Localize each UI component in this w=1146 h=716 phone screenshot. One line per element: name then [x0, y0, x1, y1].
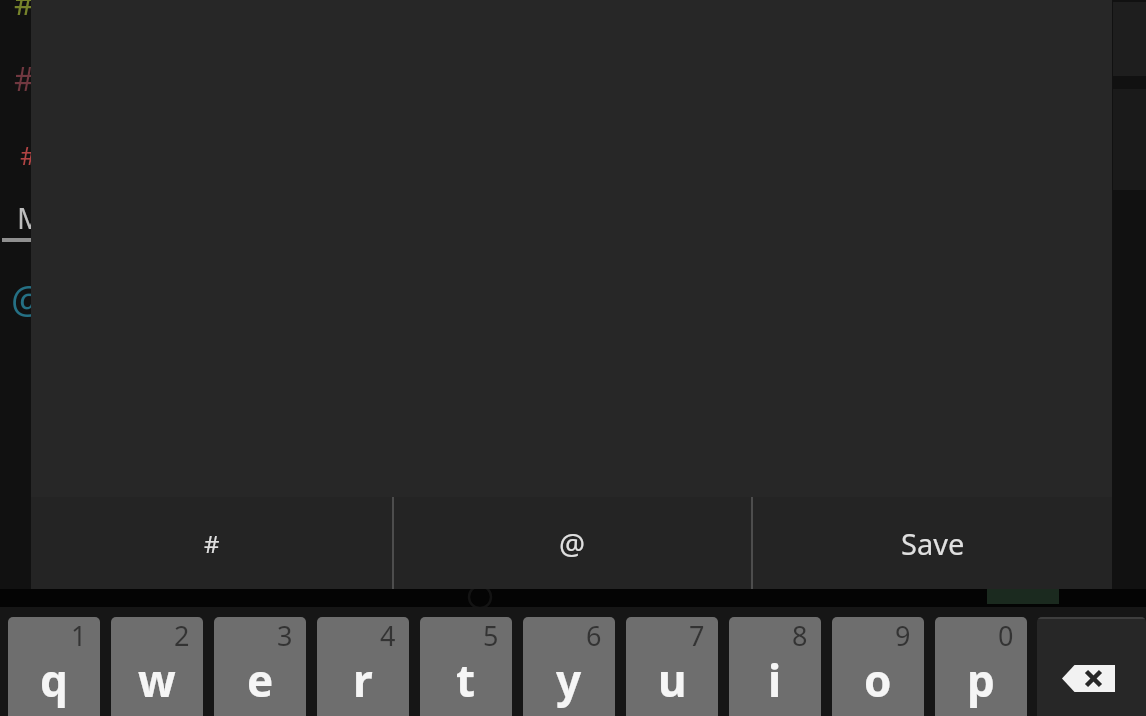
button[interactable]: y: [523, 617, 615, 716]
button[interactable]: Save: [753, 497, 1112, 589]
staticText: #: [14, 0, 35, 25]
button[interactable]: r: [317, 617, 409, 716]
staticText: #: [20, 137, 37, 172]
button[interactable]: t: [420, 617, 512, 716]
staticText: M: [17, 198, 44, 237]
staticText: #: [14, 57, 35, 101]
button[interactable]: @: [394, 497, 751, 589]
staticText: q: [40, 650, 68, 710]
staticText: 0: [998, 617, 1014, 654]
staticText: 8: [792, 617, 808, 654]
staticText: 5: [483, 617, 499, 654]
staticText: t: [456, 650, 476, 710]
staticText: o: [864, 650, 892, 710]
staticText: 9: [895, 617, 911, 654]
staticText: #: [204, 527, 220, 560]
button[interactable]: p: [935, 617, 1027, 716]
button[interactable]: u: [626, 617, 718, 716]
staticText: y: [556, 650, 582, 710]
staticText: @: [559, 524, 586, 563]
staticText: 3: [277, 617, 293, 654]
button[interactable]: e: [214, 617, 306, 716]
staticText: i: [768, 650, 782, 710]
staticText: u: [658, 650, 687, 710]
staticText: w: [138, 650, 176, 710]
staticText: Save: [901, 524, 965, 563]
button[interactable]: o: [832, 617, 924, 716]
staticText: 4: [380, 617, 396, 654]
staticText: r: [353, 650, 373, 710]
button[interactable]: [1037, 617, 1146, 716]
staticText: 1: [71, 617, 87, 654]
staticText: 7: [689, 617, 705, 654]
button[interactable]: i: [729, 617, 821, 716]
staticText: 6: [586, 617, 602, 654]
staticText: e: [247, 650, 274, 710]
button[interactable]: w: [111, 617, 203, 716]
staticText: @: [11, 272, 46, 324]
button[interactable]: #: [31, 497, 392, 589]
staticText: 2: [174, 617, 190, 654]
button[interactable]: q: [8, 617, 100, 716]
staticText: p: [967, 650, 995, 710]
